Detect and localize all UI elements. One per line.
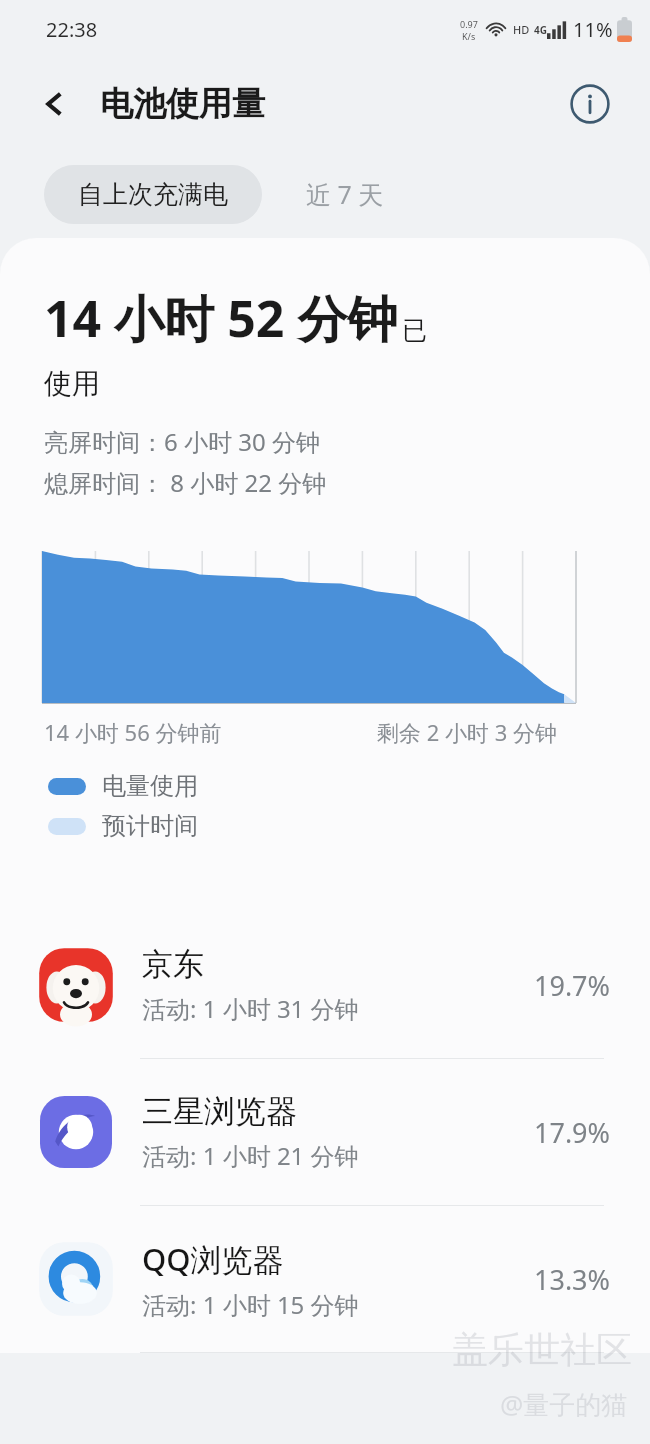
staticText: 活动: 1 小时 21 分钟 xyxy=(142,1139,359,1172)
staticText: 熄屏时间： 8 小时 22 分钟 xyxy=(44,466,327,499)
button[interactable]: QQ浏览器 xyxy=(0,1206,650,1352)
staticText: QQ浏览器 xyxy=(142,1238,284,1280)
staticText: 使用 xyxy=(44,366,100,401)
staticText: 剩余 2 小时 3 分钟 xyxy=(377,717,558,747)
button[interactable]: 近 7 天 xyxy=(262,163,428,225)
staticText: 自上次充满电 xyxy=(78,179,228,210)
staticText: 11% xyxy=(573,16,613,43)
staticText: 预计时间 xyxy=(102,811,198,841)
staticText: 已 xyxy=(402,315,427,346)
staticText: 活动: 1 小时 31 分钟 xyxy=(142,992,359,1025)
button[interactable]: Information xyxy=(566,80,614,128)
staticText: 14 小时 52 分钟 xyxy=(44,284,398,352)
button[interactable]: Back xyxy=(30,80,78,128)
staticText: K/s xyxy=(462,30,476,42)
staticText: 22:38 xyxy=(46,16,98,43)
button[interactable]: 自上次充满电 xyxy=(44,165,262,224)
staticText: @量子的猫 xyxy=(500,1386,628,1422)
staticText: 14 小时 56 分钟前 xyxy=(44,717,222,747)
staticText: 近 7 天 xyxy=(306,177,384,211)
staticText: 电池使用量 xyxy=(100,83,265,125)
staticText: 13.3% xyxy=(533,1261,610,1298)
staticText: 19.7% xyxy=(533,967,610,1004)
staticText: 活动: 1 小时 15 分钟 xyxy=(142,1288,359,1321)
staticText: 三星浏览器 xyxy=(142,1092,297,1131)
staticText: 电量使用 xyxy=(102,771,198,801)
staticText: HD xyxy=(513,22,530,37)
button[interactable]: 京东 xyxy=(0,912,650,1058)
staticText: 17.9% xyxy=(533,1114,610,1151)
staticText: 4G xyxy=(534,23,547,37)
button[interactable]: 三星浏览器 xyxy=(0,1059,650,1205)
staticText: 盖乐世社区 xyxy=(452,1327,632,1372)
staticText: 京东 xyxy=(142,945,204,984)
staticText: 亮屏时间：6 小时 30 分钟 xyxy=(44,425,320,458)
staticText: 0.97 xyxy=(460,18,478,30)
